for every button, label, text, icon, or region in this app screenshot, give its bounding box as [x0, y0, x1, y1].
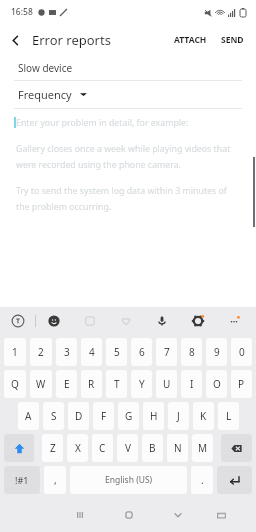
staticText: 1 [12, 345, 18, 359]
button[interactable]: , [44, 466, 66, 494]
button[interactable]: Stickers [72, 307, 108, 335]
staticText: G [125, 409, 133, 423]
staticText: 6 [139, 345, 145, 359]
button[interactable]: Backspace [221, 434, 252, 462]
button[interactable]: . [191, 466, 213, 494]
staticText: 7 [164, 345, 170, 359]
staticText: 16:58 [11, 6, 33, 18]
button[interactable]: Slow device [0, 55, 256, 80]
staticText: 3 [64, 345, 70, 359]
button[interactable]: L [218, 402, 239, 430]
staticText: K [200, 409, 207, 423]
staticText: !#1 [15, 474, 29, 486]
button[interactable]: 3 [56, 338, 77, 366]
staticText: L [226, 409, 232, 423]
staticText: F [101, 409, 107, 423]
button[interactable]: Enter [217, 466, 252, 494]
button[interactable]: T [106, 370, 127, 398]
staticText: E [64, 377, 70, 391]
button[interactable]: X [67, 434, 88, 462]
staticText: M [198, 441, 208, 455]
button[interactable]: Hide keyboard [153, 498, 202, 532]
button[interactable]: N [167, 434, 188, 462]
staticText: 5 [114, 345, 120, 359]
button[interactable]: !#1 [4, 466, 40, 494]
button[interactable]: E [56, 370, 77, 398]
staticText: Slow device [18, 61, 73, 75]
staticText: S [51, 409, 57, 423]
staticText: Try to send the system log data within 3… [16, 185, 227, 197]
staticText: 4 [89, 345, 95, 359]
button[interactable]: S [43, 402, 64, 430]
button[interactable]: H [143, 402, 164, 430]
staticText: P [238, 377, 245, 391]
button[interactable]: 0 [231, 338, 252, 366]
button[interactable]: 1 [4, 338, 26, 366]
button[interactable]: I [181, 370, 202, 398]
button[interactable]: M [192, 434, 213, 462]
staticText: W [36, 377, 46, 391]
button[interactable]: English (US) [70, 466, 187, 494]
button[interactable]: C [92, 434, 113, 462]
button[interactable]: W [30, 370, 52, 398]
button[interactable]: 8 [181, 338, 202, 366]
staticText: D [75, 409, 83, 423]
staticText: 9 [214, 345, 220, 359]
button[interactable]: SEND [215, 28, 250, 52]
button[interactable]: 6 [131, 338, 152, 366]
button[interactable]: F [93, 402, 114, 430]
staticText: R [88, 377, 95, 391]
button[interactable]: 5 [106, 338, 127, 366]
button[interactable]: Home [104, 498, 153, 532]
button[interactable]: J [168, 402, 189, 430]
button[interactable]: Translate [0, 307, 35, 335]
button[interactable]: 9 [206, 338, 227, 366]
button[interactable]: Emoji [36, 307, 72, 335]
staticText: Error reports [32, 31, 111, 49]
button[interactable]: 7 [156, 338, 177, 366]
button[interactable]: G [118, 402, 139, 430]
button[interactable]: Q [4, 370, 26, 398]
staticText: ATTACH [174, 34, 207, 46]
button[interactable]: R [81, 370, 102, 398]
staticText: SEND [221, 34, 244, 46]
staticText: N [174, 441, 182, 455]
button[interactable]: D [68, 402, 89, 430]
staticText: 2 [38, 345, 44, 359]
button[interactable]: P [231, 370, 252, 398]
staticText: T [114, 377, 120, 391]
button[interactable]: O [206, 370, 227, 398]
button[interactable]: K [193, 402, 214, 430]
button[interactable]: Switch keyboard [202, 498, 241, 532]
button[interactable]: 4 [81, 338, 102, 366]
staticText: English (US) [105, 474, 153, 486]
staticText: Gallery closes once a week while playing… [16, 143, 231, 155]
staticText: Z [50, 441, 56, 455]
button[interactable]: Back [0, 25, 30, 55]
staticText: were recorded using the phone camera. [16, 159, 181, 171]
button[interactable]: B [142, 434, 163, 462]
staticText: X [75, 441, 81, 455]
button[interactable]: Recents [55, 498, 104, 532]
button[interactable]: ATTACH [168, 28, 213, 52]
button[interactable]: U [156, 370, 177, 398]
staticText: J [177, 409, 180, 423]
button[interactable]: Shift [4, 434, 34, 462]
button[interactable]: GIF [108, 307, 144, 335]
button[interactable]: Voice input [144, 307, 180, 335]
button[interactable]: V [117, 434, 138, 462]
staticText: Q [11, 377, 19, 391]
button[interactable]: Frequency [0, 81, 256, 108]
button[interactable]: Y [131, 370, 152, 398]
staticText: 0 [239, 345, 245, 359]
button[interactable]: Z [42, 434, 63, 462]
staticText: the problem occurring. [16, 201, 112, 213]
staticText: Y [139, 377, 145, 391]
staticText: , [54, 473, 57, 487]
staticText: C [99, 441, 106, 455]
button[interactable]: A [18, 402, 39, 430]
button[interactable]: More options [216, 307, 252, 335]
button[interactable]: 2 [30, 338, 52, 366]
staticText: Frequency [18, 87, 72, 102]
button[interactable]: Settings [180, 307, 216, 335]
